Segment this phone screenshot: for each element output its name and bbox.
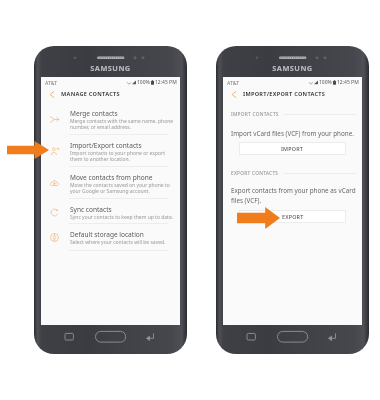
button[interactable]: Sync contacts bbox=[41, 199, 180, 224]
staticText: Import vCard files (VCF) from your phone… bbox=[231, 129, 354, 138]
staticText: Merge contacts bbox=[70, 109, 118, 118]
staticText: MANAGE CONTACTS bbox=[61, 90, 120, 98]
button[interactable]: EXPORT bbox=[239, 210, 346, 223]
button[interactable]: Back bbox=[41, 87, 180, 101]
button[interactable]: IMPORT bbox=[239, 142, 346, 155]
other: Back bbox=[223, 87, 243, 101]
staticText: SAMSUNG bbox=[216, 63, 369, 73]
staticText: Sync your contacts to keep them up to da… bbox=[70, 214, 174, 221]
staticText: Merge contacts with the same name, phone… bbox=[70, 118, 174, 131]
button[interactable]: Back bbox=[223, 87, 362, 101]
staticText: EXPORT CONTACTS bbox=[231, 170, 279, 177]
staticText: SAMSUNG bbox=[34, 63, 187, 73]
staticText: AT&T bbox=[227, 79, 240, 86]
staticText: Select where your contacts will be saved… bbox=[70, 239, 166, 246]
button[interactable]: Merge contacts bbox=[41, 103, 180, 135]
staticText: IMPORT bbox=[281, 145, 304, 152]
button[interactable]: Default storage location bbox=[41, 224, 180, 251]
staticText: Import contacts to your phone or export … bbox=[70, 150, 165, 163]
staticText: 12:45 PM bbox=[337, 79, 359, 86]
other: Back bbox=[41, 87, 61, 101]
button[interactable]: Import/Export contacts bbox=[41, 135, 180, 167]
staticText: Export contacts from your phone as vCard… bbox=[231, 186, 356, 204]
staticText: Default storage location bbox=[70, 230, 144, 239]
staticText: 100% bbox=[137, 79, 150, 86]
staticText: IMPORT CONTACTS bbox=[231, 111, 279, 118]
staticText: Move contacts from phone bbox=[70, 173, 153, 182]
staticText: Import/Export contacts bbox=[70, 141, 142, 150]
staticText: Sync contacts bbox=[70, 205, 112, 214]
staticText: 12:45 PM bbox=[155, 79, 177, 86]
staticText: Move the contacts saved on your phone to… bbox=[70, 182, 170, 195]
staticText: 100% bbox=[319, 79, 332, 86]
staticText: EXPORT bbox=[282, 213, 304, 220]
staticText: IMPORT/EXPORT CONTACTS bbox=[243, 90, 326, 98]
button[interactable]: Move contacts from phone bbox=[41, 167, 180, 199]
staticText: AT&T bbox=[45, 79, 58, 86]
